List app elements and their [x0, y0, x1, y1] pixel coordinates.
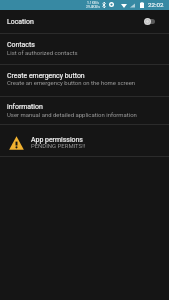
button[interactable]: information	[0, 97, 169, 124]
button[interactable]: Location	[0, 10, 169, 33]
staticText: 1.1KB/s	[87, 1, 100, 5]
staticText: 22:02	[148, 1, 164, 8]
button[interactable]: App permissions	[0, 125, 169, 156]
staticText: Create an emergency button on the home s…	[7, 79, 136, 86]
staticText: Location	[7, 18, 34, 26]
staticText: information	[7, 103, 43, 111]
button[interactable]: Create emergency button	[0, 65, 169, 96]
button[interactable]: Location toggle	[144, 17, 155, 25]
button[interactable]: Contacts	[0, 34, 169, 64]
staticText: Create emergency button	[7, 72, 85, 80]
staticText: PENDING PERMITS!!	[31, 142, 86, 149]
staticText: User manual and detailed application inf…	[7, 111, 137, 118]
staticText: Contacts	[7, 41, 35, 49]
staticText: App permissions	[31, 136, 83, 144]
staticText: List of authorized contacts	[7, 49, 78, 56]
staticText: 29.4KB/s	[86, 5, 100, 9]
